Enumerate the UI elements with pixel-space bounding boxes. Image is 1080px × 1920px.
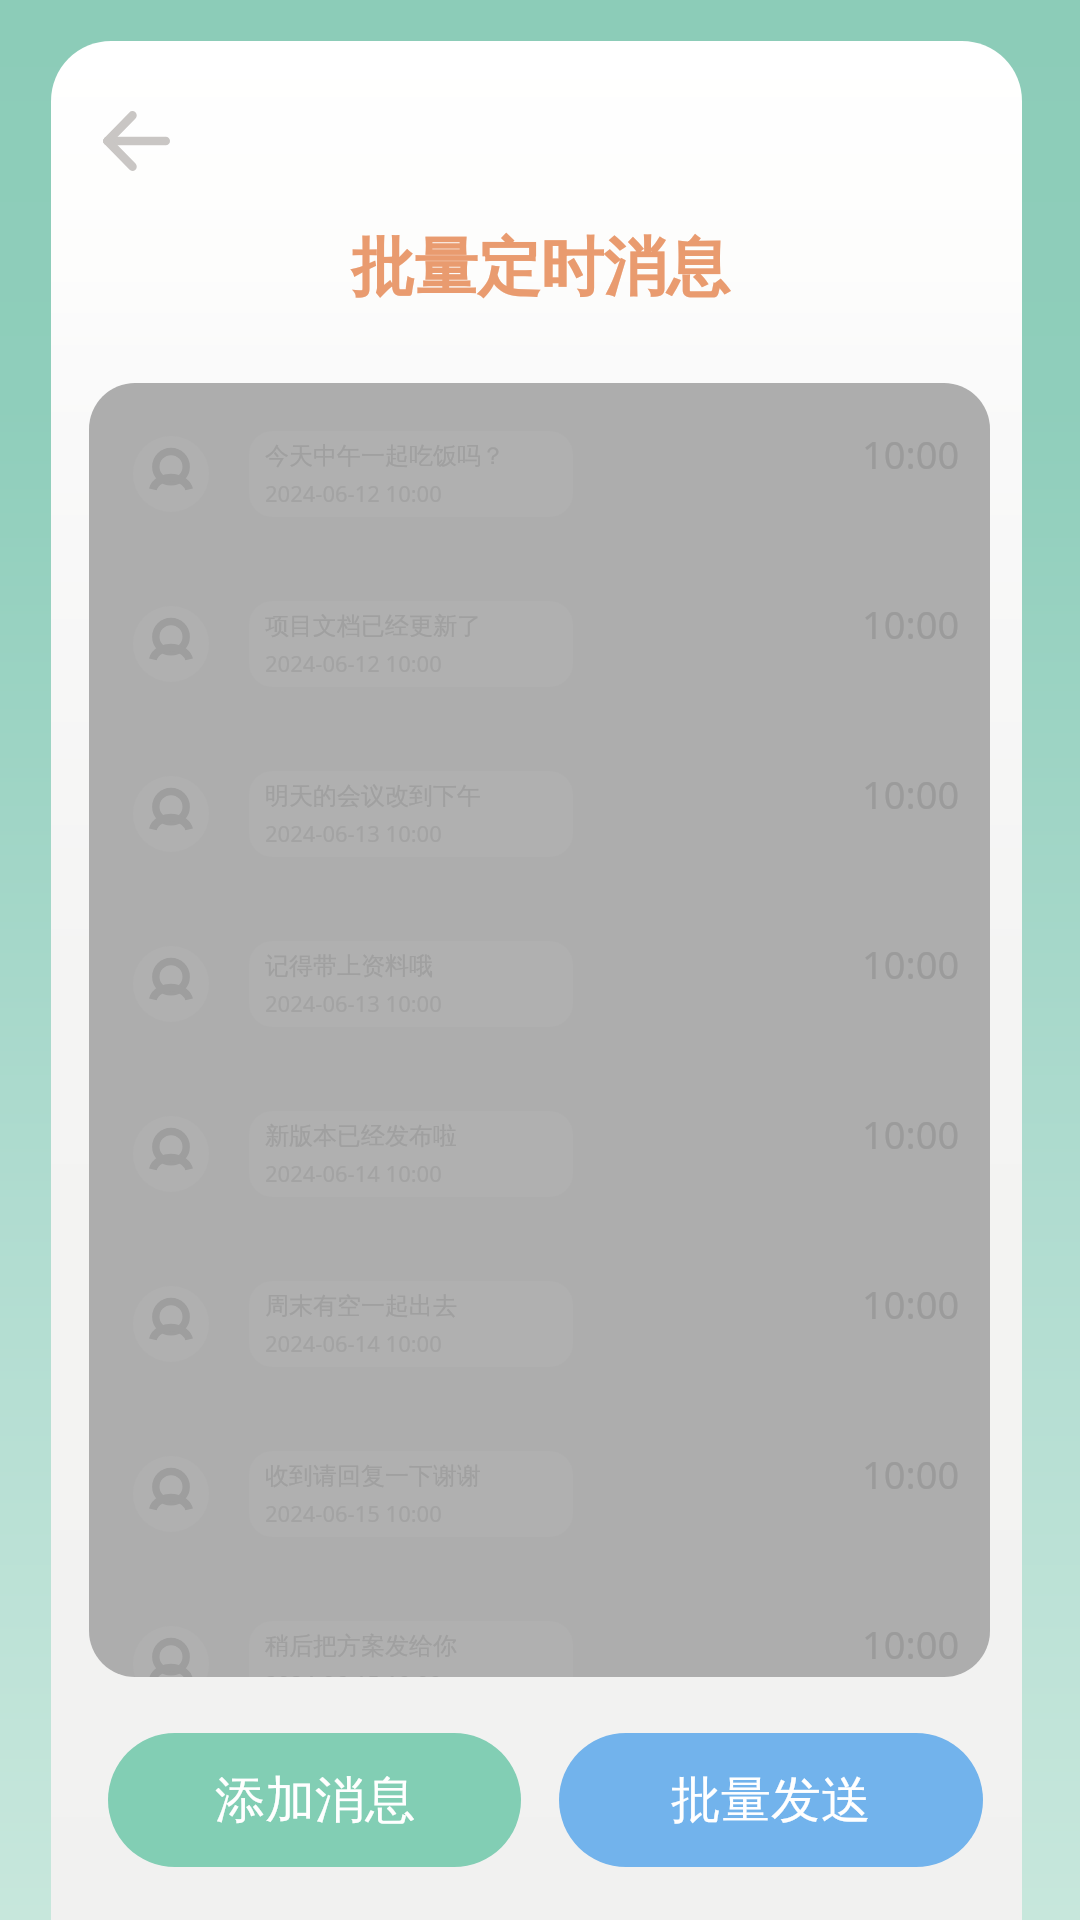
staticText: 新版本已经发布啦 bbox=[265, 1121, 457, 1151]
staticText: 项目文档已经更新了 bbox=[265, 611, 481, 641]
staticText: 稍后把方案发给你 bbox=[265, 1631, 457, 1661]
staticText: 10:00 bbox=[862, 1618, 960, 1670]
staticText: 2024-06-12 10:00 bbox=[265, 478, 442, 508]
staticText: 今天中午一起吃饭吗？ bbox=[265, 441, 505, 471]
staticText: 批量定时消息 bbox=[55, 228, 1022, 307]
staticText: 10:00 bbox=[862, 1278, 960, 1330]
staticText: 批量发送 bbox=[671, 1769, 871, 1832]
staticText: 10:00 bbox=[862, 428, 960, 480]
button[interactable]: 添加消息 bbox=[108, 1733, 521, 1867]
staticText: 2024-06-12 10:00 bbox=[265, 648, 442, 678]
staticText: 添加消息 bbox=[215, 1769, 415, 1832]
staticText: 10:00 bbox=[862, 1108, 960, 1160]
staticText: 10:00 bbox=[862, 768, 960, 820]
button[interactable]: 批量发送 bbox=[559, 1733, 983, 1867]
staticText: 2024-06-14 10:00 bbox=[265, 1328, 442, 1358]
staticText: 收到请回复一下谢谢 bbox=[265, 1461, 481, 1491]
button[interactable]: 稍后把方案发给你 bbox=[89, 1579, 990, 1677]
staticText: 10:00 bbox=[862, 598, 960, 650]
staticText: 2024-06-13 10:00 bbox=[265, 988, 442, 1018]
button[interactable]: 今天中午一起吃饭吗？ bbox=[89, 389, 990, 559]
button[interactable]: Back bbox=[80, 86, 190, 196]
staticText: 记得带上资料哦 bbox=[265, 951, 433, 981]
staticText: 2024-06-14 10:00 bbox=[265, 1158, 442, 1188]
staticText: 2024-06-15 10:00 bbox=[265, 1498, 442, 1528]
staticText: 明天的会议改到下午 bbox=[265, 781, 481, 811]
staticText: 10:00 bbox=[862, 1448, 960, 1500]
staticText: 周末有空一起出去 bbox=[265, 1291, 457, 1321]
staticText: 10:00 bbox=[862, 938, 960, 990]
staticText: 2024-06-13 10:00 bbox=[265, 818, 442, 848]
